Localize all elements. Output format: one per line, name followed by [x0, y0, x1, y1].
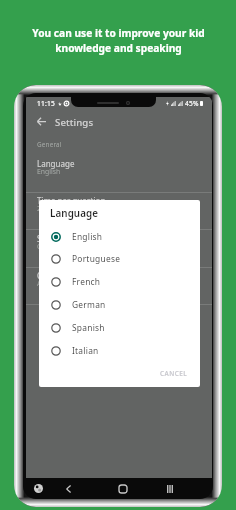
button[interactable]: Time per question	[26, 195, 212, 229]
staticText: French	[72, 276, 101, 287]
staticText: English	[72, 231, 103, 242]
button[interactable]: Language	[26, 158, 212, 192]
button[interactable]: Home	[115, 481, 130, 496]
staticText: On	[37, 242, 47, 251]
staticText: Language	[37, 158, 75, 169]
staticText: Language	[50, 207, 99, 220]
staticText: English	[37, 167, 61, 176]
staticText: Portuguese	[72, 253, 121, 264]
button[interactable]: Back	[61, 481, 76, 496]
staticText: CANCEL	[160, 369, 188, 378]
button[interactable]: CANCEL	[157, 366, 191, 381]
staticText: You can use it to improve your kid knowl…	[32, 26, 205, 55]
button[interactable]: Back	[33, 113, 50, 130]
staticText: 20 seconds	[37, 204, 73, 213]
button[interactable]: English	[39, 225, 200, 248]
staticText: 11:15	[37, 99, 55, 108]
button[interactable]: German	[39, 293, 200, 316]
staticText: Time per question	[37, 195, 106, 206]
staticText: Settings	[55, 116, 94, 129]
staticText: Sound	[37, 233, 62, 244]
staticText: Spanish	[72, 322, 105, 333]
staticText: German	[72, 299, 106, 310]
staticText: All	[37, 279, 45, 288]
button[interactable]: Categories	[26, 270, 212, 304]
button[interactable]: Spanish	[39, 316, 200, 339]
button[interactable]: Italian	[39, 339, 200, 362]
button[interactable]: Recents	[162, 481, 177, 496]
button[interactable]: Assistant	[31, 481, 46, 496]
button[interactable]: French	[39, 270, 200, 293]
staticText: General	[37, 140, 62, 149]
staticText: Categories	[37, 270, 78, 281]
button[interactable]: Portuguese	[39, 247, 200, 270]
staticText: Italian	[72, 345, 99, 356]
button[interactable]: Sound	[26, 233, 212, 267]
staticText: 45%	[185, 99, 199, 108]
